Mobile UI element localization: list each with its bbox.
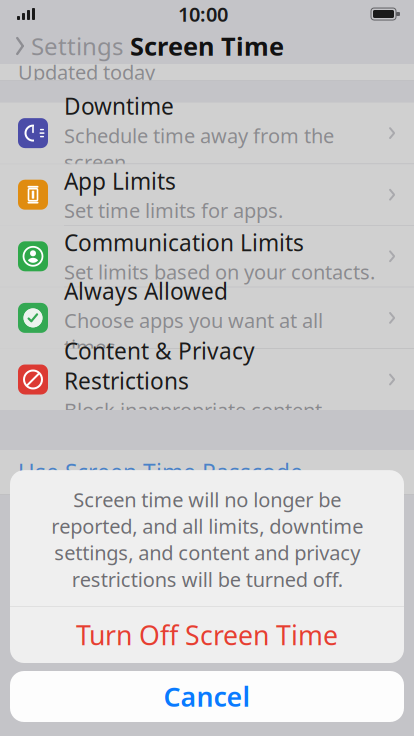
button[interactable]: Cancel (10, 671, 404, 722)
staticText: Screen Time (130, 29, 284, 63)
staticText: Content & Privacy Restrictions (64, 336, 255, 396)
staticText: Cancel (163, 679, 250, 714)
staticText: Use a passcode to secure Screen Time set… (18, 501, 373, 580)
staticText: App Limits (64, 166, 176, 196)
button[interactable]: App Limits (0, 164, 414, 225)
button[interactable]: Content & Privacy Restrictions (0, 349, 414, 410)
staticText: Set limits based on your contacts. (64, 259, 375, 285)
staticText: Choose apps you want at all times. (64, 307, 323, 360)
button[interactable]: Communication Limits (0, 226, 414, 287)
staticText: Schedule time away from the screen. (64, 122, 334, 175)
staticText: Settings (31, 30, 123, 62)
staticText: Updated today (18, 59, 155, 85)
staticText: Set time limits for apps. (64, 197, 283, 224)
staticText: Screen time will no longer be reported, … (51, 486, 363, 592)
button[interactable]: Use Screen Time Passcode (0, 450, 414, 494)
staticText: Block inappropriate content. (64, 397, 327, 423)
staticText: Communication Limits (64, 227, 304, 258)
button[interactable]: Settings (0, 24, 123, 68)
staticText: Use Screen Time Passcode (18, 457, 303, 487)
staticText: Turn Off Screen Time (76, 617, 338, 653)
staticText: 10:00 (178, 1, 228, 27)
staticText: Downtime (64, 91, 174, 121)
button[interactable]: Turn Off Screen Time (10, 607, 404, 663)
button[interactable]: Always Allowed (0, 287, 414, 348)
button[interactable]: Downtime (0, 103, 414, 164)
staticText: Always Allowed (64, 276, 228, 306)
